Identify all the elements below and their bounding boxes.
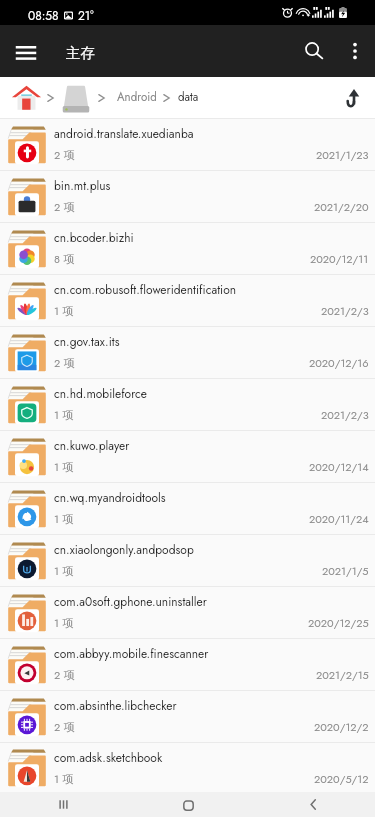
staticText: 2 项	[54, 355, 75, 371]
staticText: 1 项	[54, 303, 74, 319]
staticText: cn.xiaolongonly.andpodsop	[54, 541, 194, 558]
staticText: 1 项	[54, 407, 74, 423]
staticText: 1 项	[54, 459, 74, 475]
staticText: com.absinthe.libchecker	[54, 697, 177, 714]
staticText: 21°	[78, 7, 94, 24]
staticText: 08:58	[28, 7, 59, 24]
button[interactable]: bin.mt.plus	[0, 170, 375, 222]
button[interactable]: com.absinthe.libchecker	[0, 690, 375, 742]
staticText: 1 项	[54, 563, 74, 579]
staticText: com.adsk.sketchbook	[54, 749, 163, 766]
button[interactable]: cn.xiaolongonly.andpodsop	[0, 534, 375, 586]
staticText: Android	[117, 89, 157, 106]
staticText: 2020/5/12	[314, 771, 369, 787]
button[interactable]: Navigation drawer	[6, 33, 46, 73]
staticText: 2021/1/23	[316, 147, 369, 163]
staticText: cn.kuwo.player	[54, 437, 130, 454]
staticText: bin.mt.plus	[54, 177, 111, 194]
staticText: cn.com.robusoft.floweridentification	[54, 281, 237, 298]
staticText: com.abbyy.mobile.finescanner	[54, 645, 209, 662]
button[interactable]: com.a0soft.gphone.uninstaller	[0, 586, 375, 638]
staticText: 1 项	[54, 771, 74, 787]
staticText: 2021/1/5	[322, 563, 369, 579]
staticText: 主存	[66, 44, 95, 62]
staticText: com.a0soft.gphone.uninstaller	[54, 593, 207, 610]
button[interactable]: Back	[278, 792, 348, 817]
staticText: data	[178, 89, 199, 106]
button[interactable]: Internal storage	[57, 79, 95, 117]
button[interactable]: cn.wq.myandroidtools	[0, 482, 375, 534]
staticText: 2 项	[54, 719, 75, 735]
staticText: 2021/2/20	[314, 199, 369, 215]
button[interactable]: com.abbyy.mobile.finescanner	[0, 638, 375, 690]
staticText: cn.hd.mobileforce	[54, 385, 148, 402]
button[interactable]: More options	[335, 31, 375, 71]
staticText: 2 项	[54, 199, 75, 215]
staticText: cn.bcoder.bizhi	[54, 229, 134, 246]
staticText: android.translate.xuedianba	[54, 125, 194, 142]
staticText: 2020/12/14	[309, 459, 369, 475]
button[interactable]: cn.gov.tax.its	[0, 326, 375, 378]
button[interactable]: Recent apps	[28, 792, 98, 817]
button[interactable]: Go up one level	[333, 79, 371, 117]
staticText: 2 项	[54, 147, 75, 163]
staticText: 2 项	[54, 667, 75, 683]
staticText: cn.gov.tax.its	[54, 333, 120, 350]
staticText: 2020/12/16	[309, 355, 369, 371]
staticText: 2020/12/11	[310, 251, 369, 267]
staticText: 2021/2/3	[321, 407, 369, 423]
button[interactable]: android.translate.xuedianba	[0, 118, 375, 170]
button[interactable]: Home	[9, 79, 44, 117]
button[interactable]: cn.hd.mobileforce	[0, 378, 375, 430]
staticText: 2020/12/2	[314, 719, 369, 735]
staticText: cn.wq.myandroidtools	[54, 489, 166, 506]
staticText: 2020/11/24	[309, 511, 369, 527]
button[interactable]: com.adsk.sketchbook	[0, 742, 375, 792]
staticText: 2020/12/25	[308, 615, 369, 631]
button[interactable]: cn.bcoder.bizhi	[0, 222, 375, 274]
button[interactable]: data	[171, 81, 206, 114]
button[interactable]: Home	[153, 792, 223, 817]
staticText: 1 项	[54, 511, 74, 527]
staticText: 8 项	[54, 251, 75, 267]
staticText: 2021/2/3	[321, 303, 369, 319]
button[interactable]: Search	[292, 29, 336, 73]
button[interactable]: Android	[110, 81, 164, 114]
staticText: 1 项	[54, 615, 74, 631]
button[interactable]: cn.com.robusoft.floweridentification	[0, 274, 375, 326]
button[interactable]: cn.kuwo.player	[0, 430, 375, 482]
staticText: 2021/2/15	[316, 667, 369, 683]
